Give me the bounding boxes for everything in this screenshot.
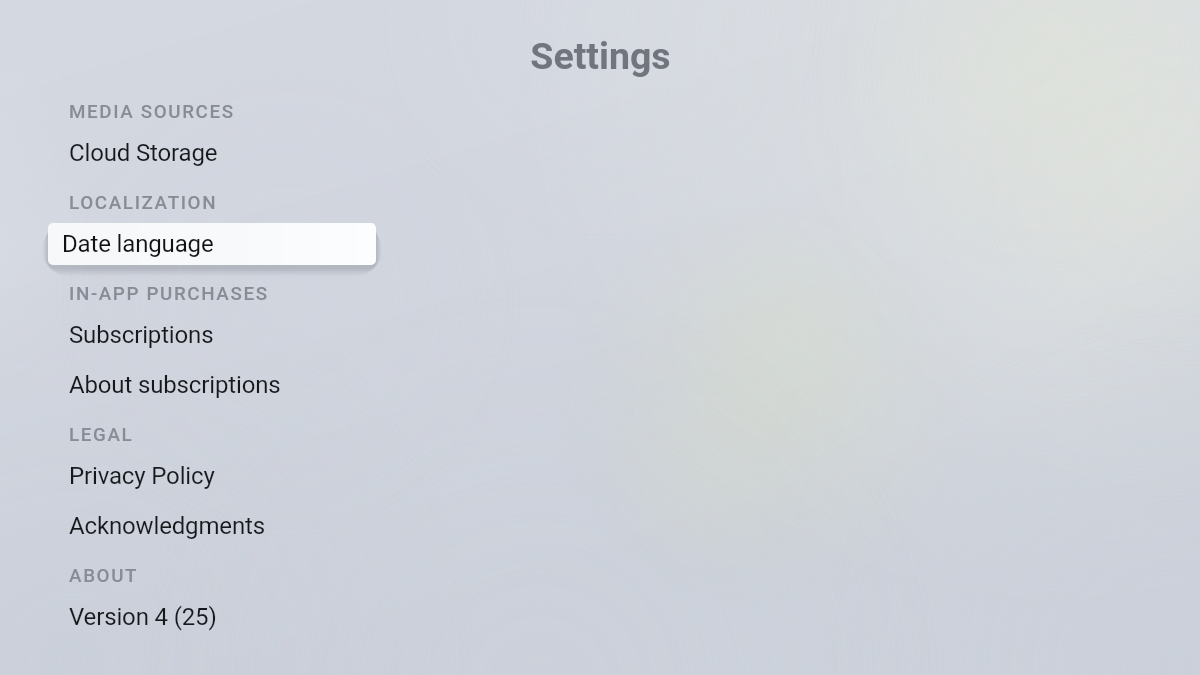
button[interactable]: Acknowledgments — [48, 505, 376, 547]
staticText: LEGAL — [69, 424, 134, 446]
staticText: Version 4 (25) — [69, 603, 217, 631]
staticText: MEDIA SOURCES — [69, 101, 235, 123]
staticText: About subscriptions — [69, 371, 281, 399]
staticText: IN-APP PURCHASES — [69, 283, 269, 305]
staticText: Privacy Policy — [69, 462, 215, 490]
button[interactable]: Subscriptions — [48, 314, 376, 356]
staticText: Subscriptions — [69, 321, 214, 349]
button[interactable]: Version 4 (25) — [48, 596, 376, 638]
staticText: ABOUT — [69, 565, 139, 587]
staticText: Cloud Storage — [69, 139, 218, 167]
staticText: Acknowledgments — [69, 512, 265, 540]
button[interactable]: Cloud Storage — [48, 132, 376, 174]
button[interactable]: About subscriptions — [48, 364, 376, 406]
button[interactable]: Privacy Policy — [48, 455, 376, 497]
staticText: Date language — [62, 230, 214, 258]
staticText: Settings — [530, 34, 671, 78]
staticText: LOCALIZATION — [69, 192, 218, 214]
button[interactable]: Date language — [48, 223, 376, 265]
